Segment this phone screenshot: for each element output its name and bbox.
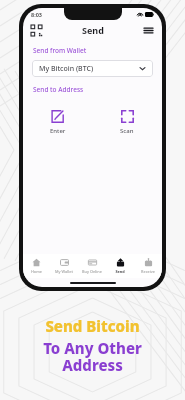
- button[interactable]: Send: [106, 254, 134, 278]
- staticText: Home: [31, 269, 42, 274]
- button[interactable]: Receive: [134, 254, 162, 278]
- staticText: Send to Address: [33, 85, 84, 94]
- button[interactable]: My Bitcoin (BTC): [32, 60, 153, 77]
- staticText: Send: [115, 269, 125, 274]
- staticText: Scan: [120, 127, 134, 135]
- staticText: Enter: [50, 127, 66, 135]
- button[interactable]: Buy Online: [78, 254, 106, 278]
- button[interactable]: My Wallet: [50, 254, 78, 278]
- staticText: Send: [82, 24, 104, 36]
- button[interactable]: Menu: [143, 25, 154, 36]
- staticText: To Any Other Address: [43, 338, 142, 376]
- staticText: Send Bitcoin: [45, 316, 140, 336]
- staticText: My Bitcoin (BTC): [39, 64, 94, 74]
- button[interactable]: Scan QR code: [31, 25, 42, 36]
- staticText: My Wallet: [55, 269, 73, 274]
- button[interactable]: Enter: [23, 107, 92, 137]
- staticText: Receive: [141, 269, 155, 274]
- button[interactable]: Scan: [92, 107, 162, 137]
- button[interactable]: Home: [23, 254, 50, 278]
- staticText: Buy Online: [82, 269, 102, 274]
- staticText: 8:03: [31, 11, 42, 18]
- staticText: Send from Wallet: [33, 46, 87, 55]
